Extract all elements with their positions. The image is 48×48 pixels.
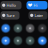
- button[interactable]: Settings: [37, 35, 47, 46]
- button[interactable]: Sure: [0, 11, 19, 19]
- button[interactable]: Photos: [25, 35, 35, 46]
- button[interactable]: Hello: [0, 1, 21, 9]
- staticText: Hello: [6, 3, 15, 8]
- button[interactable]: Later: [28, 11, 47, 19]
- button[interactable]: Maps: [0, 35, 11, 46]
- staticText: Later: [34, 13, 43, 18]
- button[interactable]: Camera: [13, 35, 23, 46]
- button[interactable]: Hi: [26, 1, 47, 9]
- button[interactable]: Music: [37, 23, 47, 33]
- staticText: Sure: [6, 13, 14, 18]
- button[interactable]: Messages: [0, 23, 11, 33]
- staticText: Hi: [33, 3, 37, 8]
- button[interactable]: Phone: [13, 23, 23, 33]
- button[interactable]: Mail: [25, 23, 35, 33]
